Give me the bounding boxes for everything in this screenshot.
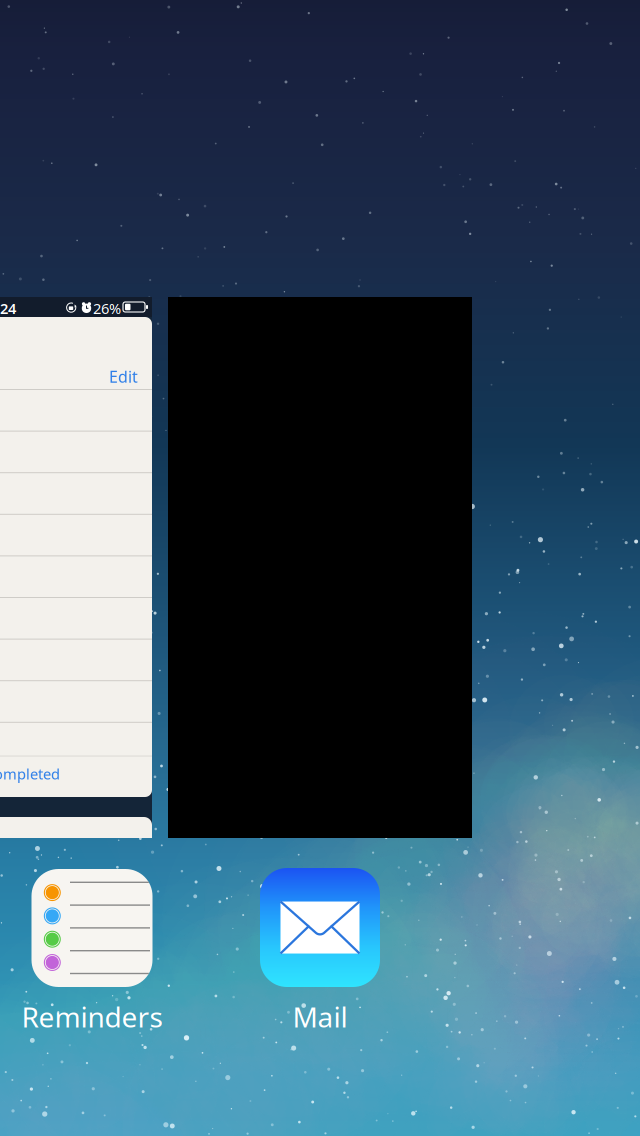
button[interactable]: Reminders app card: [0, 297, 152, 838]
button[interactable]: Reminders: [0, 869, 192, 1035]
staticText: Show Completed: [0, 764, 60, 783]
button[interactable]: Mail: [220, 868, 420, 1035]
staticText: Reminders: [21, 998, 162, 1035]
staticText: 26%: [93, 298, 121, 318]
staticText: 10:24: [0, 298, 16, 318]
staticText: Mail: [292, 998, 347, 1035]
staticText: Edit: [109, 366, 138, 387]
